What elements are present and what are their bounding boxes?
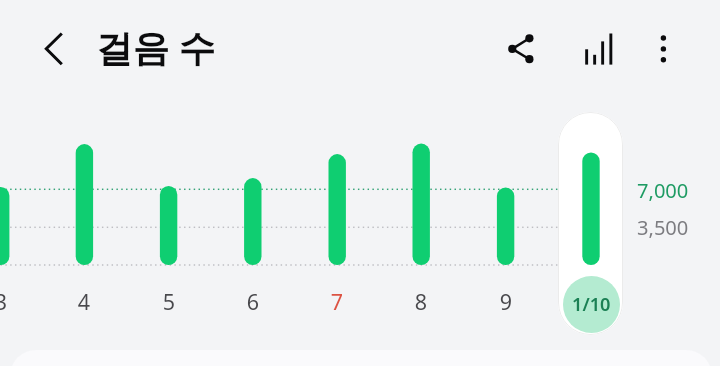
- button[interactable]: More options: [645, 25, 683, 75]
- button[interactable]: Back: [30, 25, 78, 73]
- button[interactable]: 5: [129, 287, 209, 315]
- staticText: 8: [381, 287, 461, 315]
- button[interactable]: 9: [466, 287, 546, 315]
- button[interactable]: 7: [297, 287, 377, 315]
- staticText: 3: [0, 287, 41, 315]
- staticText: 걸음 수: [96, 22, 215, 72]
- button[interactable]: Chart view: [575, 25, 625, 75]
- button[interactable]: Today, 1/10: [558, 112, 623, 335]
- staticText: 6: [213, 287, 293, 315]
- staticText: 1/10: [572, 292, 611, 317]
- button[interactable]: Share: [497, 25, 545, 73]
- staticText: 9: [466, 287, 546, 315]
- staticText: 7: [297, 287, 377, 315]
- staticText: 4: [44, 287, 124, 315]
- button[interactable]: 6: [213, 287, 293, 315]
- button[interactable]: 4: [44, 287, 124, 315]
- staticText: 5: [129, 287, 209, 315]
- staticText: 7,000: [637, 177, 689, 204]
- button[interactable]: 3: [0, 287, 41, 315]
- staticText: 3,500: [637, 214, 689, 241]
- button[interactable]: 1/10: [563, 276, 620, 333]
- button[interactable]: 8: [381, 287, 461, 315]
